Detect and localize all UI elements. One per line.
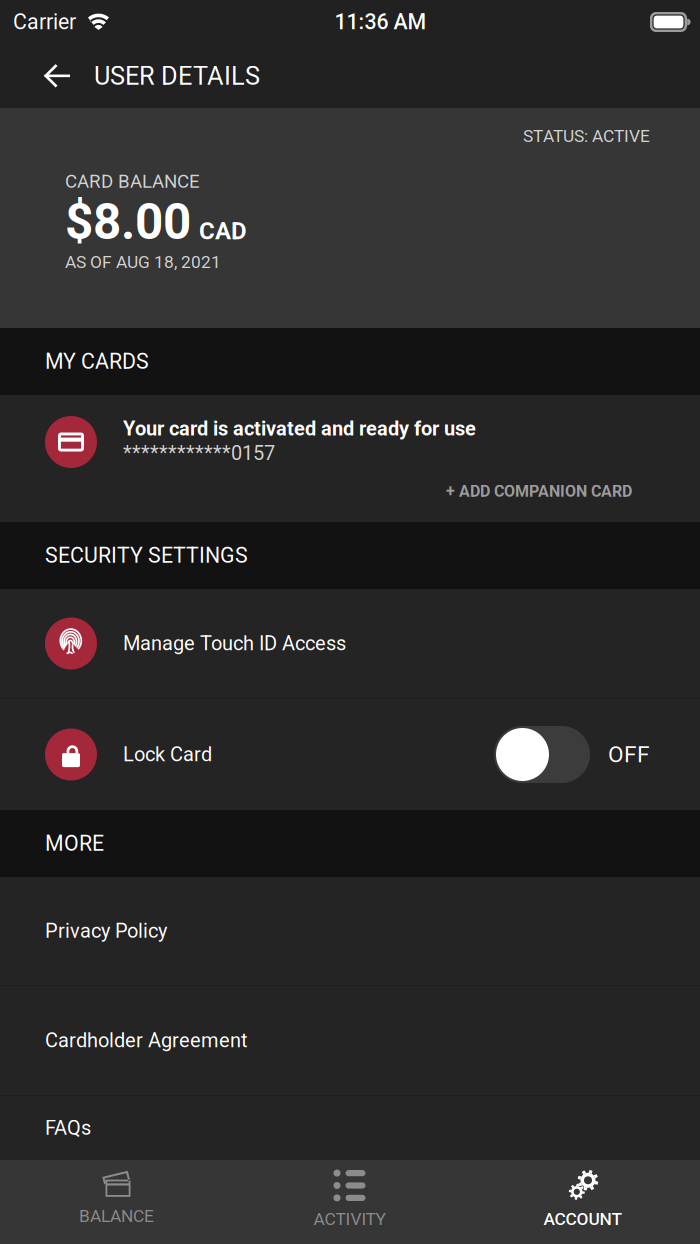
button[interactable]: BALANCE [0,1160,233,1244]
staticText: AS OF AUG 18, 2021 [65,252,221,272]
staticText: STATUS: ACTIVE [523,126,650,146]
staticText: Privacy Policy [45,919,167,943]
staticText: $8.00 [65,193,191,251]
staticText: MY CARDS [45,349,149,374]
staticText: + ADD COMPANION CARD [446,482,632,501]
staticText: FAQs [45,1116,91,1140]
staticText: CAD [199,217,247,245]
button[interactable]: ACTIVITY [233,1160,466,1244]
button[interactable]: FAQs [0,1096,700,1160]
button[interactable]: Privacy Policy [0,877,700,985]
staticText: ************0157 [123,441,275,465]
staticText: Lock Card [123,743,212,766]
button[interactable]: Manage Touch ID Access [0,589,700,698]
staticText: 11:36 AM [334,9,426,34]
staticText: USER DETAILS [94,61,260,91]
staticText: Your card is activated and ready for use [123,417,476,440]
staticText: SECURITY SETTINGS [45,543,248,568]
staticText: MORE [45,831,104,856]
staticText: Manage Touch ID Access [123,632,346,655]
staticText: Carrier [13,9,76,34]
staticText: CARD BALANCE [65,170,200,192]
button[interactable]: Lock Card [0,699,700,810]
staticText: ACTIVITY [313,1209,385,1229]
staticText: BALANCE [79,1206,154,1226]
staticText: OFF [608,741,650,768]
staticText: ACCOUNT [543,1209,622,1229]
button[interactable]: ACCOUNT [466,1160,700,1244]
button[interactable]: Back [20,44,94,108]
button[interactable]: Cardholder Agreement [0,986,700,1095]
button[interactable]: Your card is activated and ready for use [0,395,700,522]
staticText: Cardholder Agreement [45,1029,248,1052]
